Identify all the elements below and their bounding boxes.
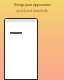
- staticText: Design your app screens: [14, 3, 51, 7]
- staticText: quickly and beautifully: [16, 9, 48, 13]
